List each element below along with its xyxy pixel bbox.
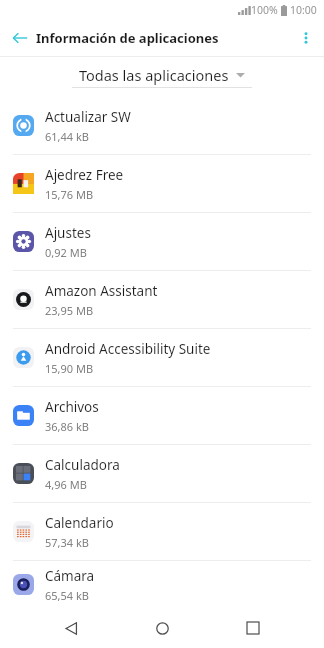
staticText: Información de aplicaciones — [36, 29, 219, 47]
staticText: 15,90 MB — [45, 361, 94, 376]
staticText: Calendario — [45, 514, 114, 532]
staticText: 10:00 — [290, 3, 317, 17]
staticText: 57,34 kB — [45, 535, 89, 550]
button[interactable]: Archivos — [0, 387, 324, 444]
staticText: 100% — [251, 3, 278, 17]
staticText: Archivos — [45, 398, 99, 416]
staticText: 15,76 MB — [45, 187, 94, 202]
staticText: Actualizar SW — [45, 108, 131, 126]
staticText: Amazon Assistant — [45, 282, 158, 300]
button[interactable]: Recents — [233, 608, 273, 648]
button[interactable]: Android Accessibility Suite — [0, 329, 324, 386]
button[interactable]: More options — [292, 24, 320, 52]
staticText: 23,95 MB — [45, 303, 94, 318]
staticText: Cámara — [45, 567, 95, 585]
button[interactable]: Amazon Assistant — [0, 271, 324, 328]
staticText: 36,86 kB — [45, 419, 89, 434]
button[interactable]: Back — [51, 608, 91, 648]
staticText: Android Accessibility Suite — [45, 340, 211, 358]
staticText: Ajedrez Free — [45, 166, 124, 184]
button[interactable]: Back — [6, 24, 34, 52]
staticText: Todas las aplicaciones — [79, 65, 229, 85]
button[interactable]: Todas las aplicaciones — [79, 65, 245, 85]
button[interactable]: Ajedrez Free — [0, 155, 324, 212]
staticText: 65,54 kB — [45, 588, 89, 603]
button[interactable]: Actualizar SW — [0, 97, 324, 154]
staticText: 0,92 MB — [45, 245, 87, 260]
button[interactable]: Home — [142, 608, 182, 648]
button[interactable]: Ajustes — [0, 213, 324, 270]
staticText: Ajustes — [45, 224, 91, 242]
button[interactable]: Calendario — [0, 503, 324, 560]
button[interactable]: Calculadora — [0, 445, 324, 502]
staticText: Calculadora — [45, 456, 120, 474]
staticText: 4,96 MB — [45, 477, 87, 492]
staticText: 61,44 kB — [45, 129, 89, 144]
button[interactable]: Cámara — [0, 561, 324, 608]
